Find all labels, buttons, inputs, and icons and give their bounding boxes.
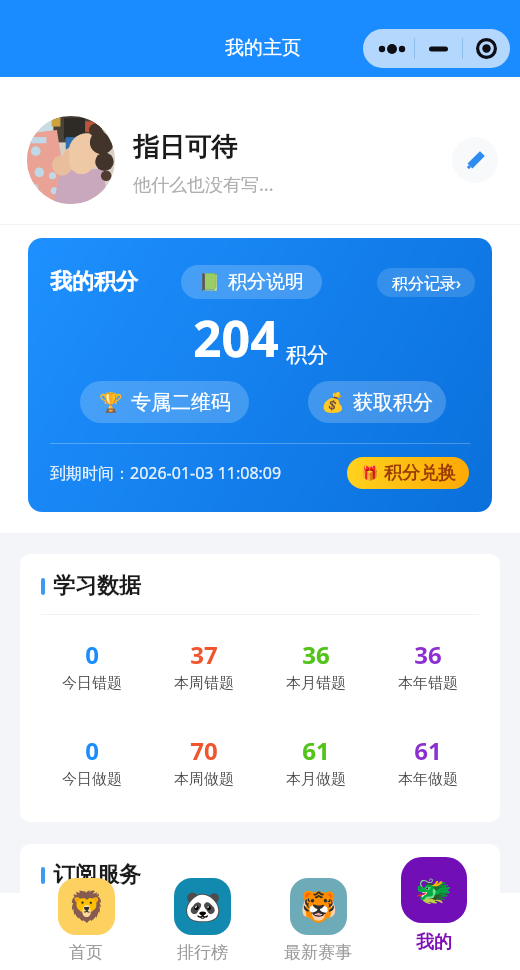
button[interactable]: 🦁 [28, 893, 144, 970]
staticText: 本周做题 [174, 770, 234, 789]
staticText: 💰 [321, 391, 345, 413]
staticText: 🏆 [99, 391, 123, 413]
staticText: 70 [190, 734, 218, 767]
staticText: 🦁 [68, 889, 106, 924]
staticText: 我的 [416, 931, 452, 954]
button[interactable]: 💰 [308, 381, 446, 423]
staticText: 61 [302, 734, 330, 767]
staticText: 🐯 [300, 889, 338, 924]
button[interactable]: 0 [36, 734, 148, 789]
staticText: 61 [414, 734, 442, 767]
button[interactable]: 37 [148, 638, 260, 693]
button[interactable]: Close [463, 29, 510, 68]
staticText: 专属二维码 [131, 390, 231, 415]
button[interactable]: 积分记录› [377, 268, 475, 297]
button[interactable]: 🐯 [260, 893, 376, 970]
button[interactable]: Minimize [415, 29, 462, 68]
staticText: 到期时间：2026-01-03 11:08:09 [50, 462, 282, 484]
staticText: 本年做题 [398, 770, 458, 789]
staticText: 我的主页 [225, 36, 301, 60]
button[interactable]: 61 [260, 734, 372, 789]
button[interactable]: 🏆 [80, 381, 249, 423]
staticText: 36 [302, 638, 330, 671]
staticText: 🎁 [361, 465, 379, 481]
button[interactable]: 0 [36, 638, 148, 693]
staticText: 本月错题 [286, 674, 346, 693]
staticText: 排行榜 [177, 942, 228, 963]
staticText: 获取积分 [353, 390, 433, 415]
staticText: 我的积分 [50, 268, 138, 296]
staticText: 最新赛事 [284, 942, 352, 963]
staticText: 37 [190, 638, 218, 671]
staticText: 🐼 [184, 889, 222, 924]
staticText: 学习数据 [53, 572, 141, 600]
button[interactable]: Edit profile [452, 137, 498, 183]
staticText: 0 [85, 638, 99, 671]
button[interactable]: 70 [148, 734, 260, 789]
staticText: 📗 [199, 272, 221, 292]
staticText: 今日错题 [62, 674, 122, 693]
button[interactable]: 🐼 [144, 893, 260, 970]
button[interactable]: 61 [372, 734, 484, 789]
staticText: 积分 [286, 342, 328, 368]
staticText: 他什么也没有写... [133, 172, 274, 197]
staticText: 0 [85, 734, 99, 767]
staticText: 指日可待 [133, 131, 237, 164]
staticText: 订阅服务 [53, 861, 141, 889]
button[interactable]: 📗 [181, 265, 322, 299]
staticText: 36 [414, 638, 442, 671]
staticText: 首页 [69, 942, 103, 963]
staticText: 本年错题 [398, 674, 458, 693]
staticText: 🐲 [415, 873, 453, 908]
staticText: 积分兑换 [384, 462, 456, 485]
staticText: 204 [193, 304, 279, 372]
button[interactable]: 36 [260, 638, 372, 693]
staticText: 本月做题 [286, 770, 346, 789]
staticText: 本周错题 [174, 674, 234, 693]
staticText: 今日做题 [62, 770, 122, 789]
staticText: 积分说明 [228, 270, 304, 294]
button[interactable]: 🐲 [376, 893, 492, 970]
staticText: 积分记录› [392, 272, 461, 294]
button[interactable]: 36 [372, 638, 484, 693]
button[interactable]: 🎁 [347, 457, 469, 489]
button[interactable]: More [363, 29, 414, 68]
